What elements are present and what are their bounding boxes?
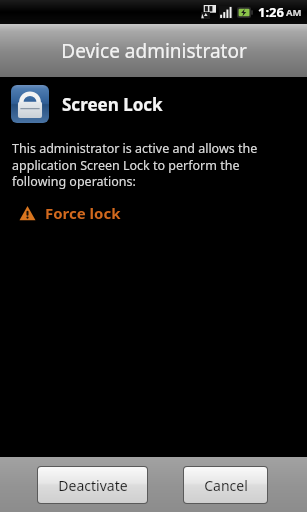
staticText: Deactivate xyxy=(58,476,128,495)
staticText: Cancel xyxy=(204,476,248,495)
staticText: 1:26 xyxy=(258,3,284,21)
staticText: Screen Lock xyxy=(62,93,163,116)
button[interactable]: Cancel xyxy=(184,467,267,503)
staticText: Force lock xyxy=(45,203,121,223)
staticText: AM xyxy=(286,6,302,19)
button[interactable]: Deactivate xyxy=(38,467,147,503)
other: Screen Lock app icon xyxy=(11,85,49,123)
staticText: This administrator is active and allows … xyxy=(12,140,287,189)
staticText: Device administrator xyxy=(61,38,247,64)
